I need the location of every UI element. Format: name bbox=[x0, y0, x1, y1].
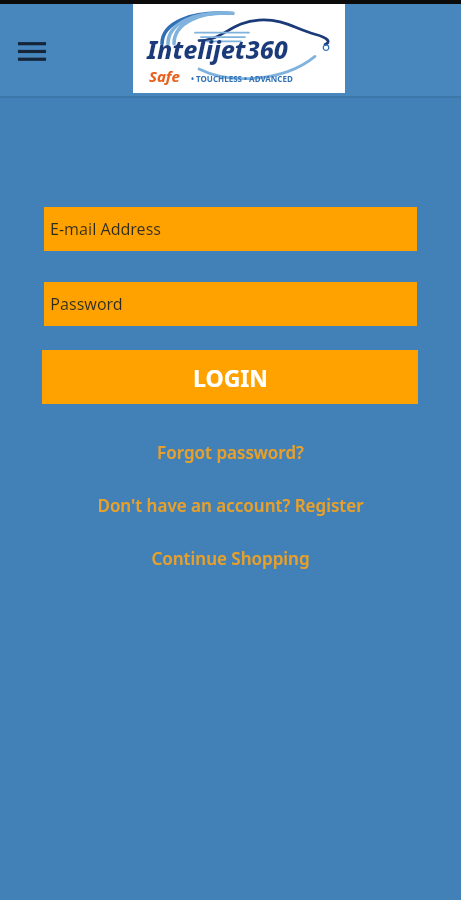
staticText: Forgot password? bbox=[157, 441, 304, 464]
button[interactable]: Don't have an account? Register bbox=[0, 489, 461, 521]
button[interactable]: Forgot password? bbox=[0, 436, 461, 468]
staticText: Password bbox=[50, 293, 123, 315]
button[interactable]: LOGIN bbox=[42, 350, 418, 404]
staticText: Continue Shopping bbox=[151, 547, 310, 570]
staticText: Safe bbox=[149, 66, 180, 86]
staticText: Don't have an account? Register bbox=[97, 494, 364, 517]
staticText: E-mail Address bbox=[50, 218, 161, 240]
button[interactable]: Open navigation menu bbox=[8, 26, 56, 74]
button[interactable]: E-mail Address bbox=[44, 207, 417, 251]
button[interactable]: Password bbox=[44, 282, 417, 326]
staticText: • TOUCHLESS • ADVANCED bbox=[191, 73, 293, 84]
staticText: Intelijet360 bbox=[147, 32, 288, 66]
staticText: LOGIN bbox=[193, 362, 268, 393]
button[interactable]: Continue Shopping bbox=[0, 542, 461, 574]
button[interactable]: Intelijet360 logo bbox=[133, 4, 345, 93]
